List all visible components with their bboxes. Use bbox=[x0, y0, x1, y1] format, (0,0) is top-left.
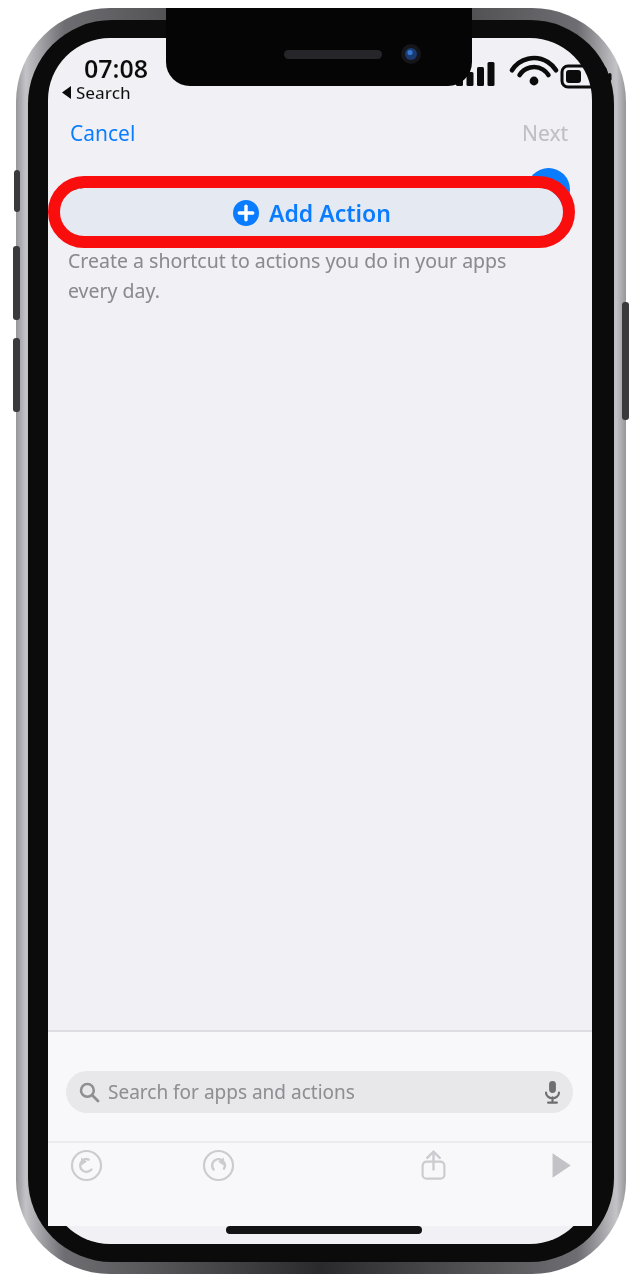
staticText: Cancel bbox=[70, 119, 136, 148]
button[interactable]: Add Action bbox=[27, 166, 596, 258]
staticText: Add Action bbox=[269, 197, 391, 228]
button[interactable]: Redo bbox=[197, 1144, 239, 1186]
button[interactable]: Run bbox=[539, 1144, 581, 1186]
button[interactable]: Back to Search bbox=[60, 79, 133, 106]
staticText: Create a shortcut to actions you do in y… bbox=[68, 247, 578, 303]
staticText: New Shortcut 1 bbox=[70, 166, 369, 219]
button[interactable]: Cancel bbox=[64, 114, 142, 153]
button[interactable]: More options bbox=[527, 168, 570, 211]
staticText: Search bbox=[76, 81, 131, 104]
staticText: Search for apps and actions bbox=[108, 1079, 355, 1105]
other: Voice search bbox=[544, 1080, 561, 1104]
button[interactable]: Share bbox=[412, 1144, 454, 1186]
staticText: Next bbox=[522, 119, 569, 148]
button[interactable]: Search for apps and actions bbox=[66, 1071, 573, 1113]
button[interactable]: Next bbox=[516, 114, 575, 153]
button[interactable]: Undo bbox=[65, 1144, 107, 1186]
staticText: 07:08 bbox=[84, 51, 149, 85]
